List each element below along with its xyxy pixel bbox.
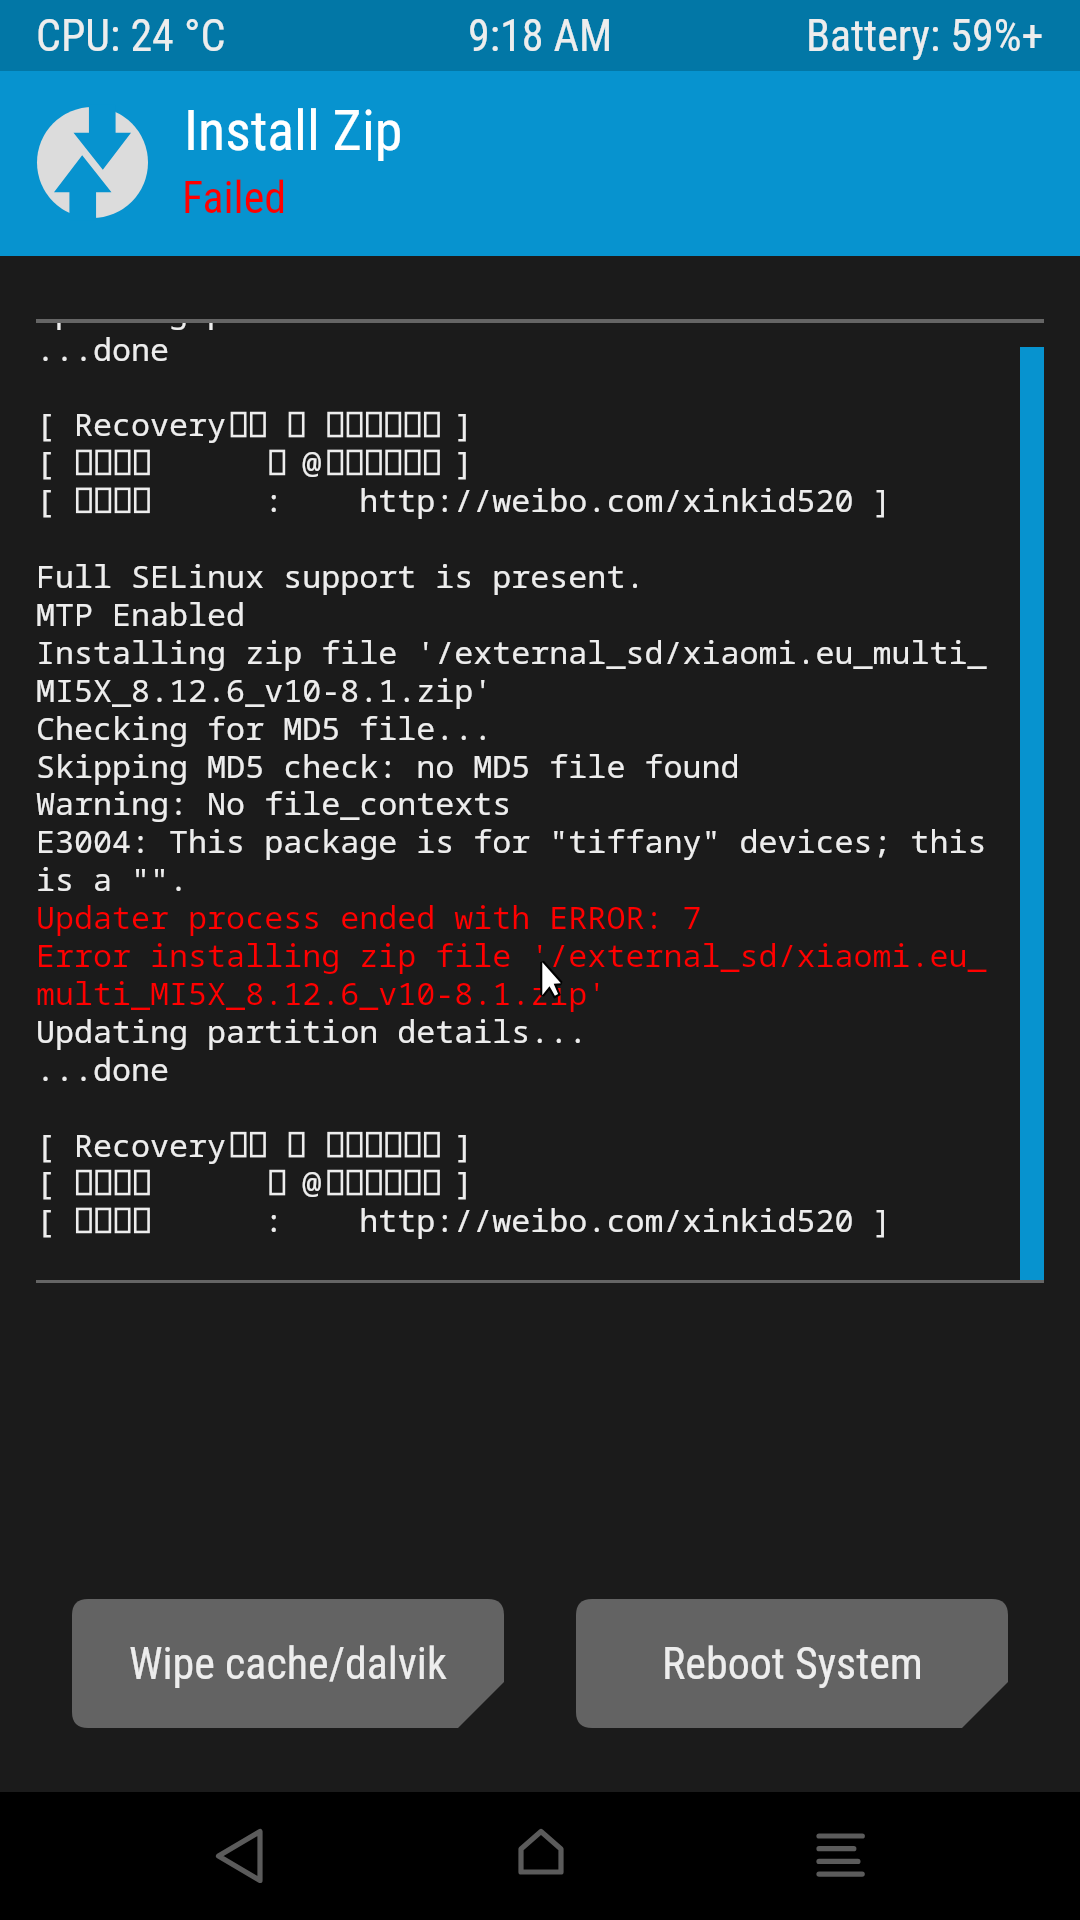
staticText: [ Recovery ] — [36, 402, 474, 445]
staticText: Error installing zip file '/external_sd/… — [36, 933, 987, 976]
staticText: Reboot System — [662, 1638, 923, 1690]
staticText: Updater process ended with ERROR: 7 — [36, 895, 702, 938]
staticText: is a "". — [36, 857, 189, 900]
staticText: ...done — [36, 1047, 170, 1090]
staticText: [ @ ] — [36, 440, 474, 483]
button[interactable]: Wipe cache/dalvik — [72, 1599, 504, 1728]
staticText: Wipe cache/dalvik — [129, 1638, 447, 1690]
staticText: Full SELinux support is present. — [36, 554, 645, 597]
staticText: CPU: 24 °C — [36, 10, 226, 62]
staticText: E3004: This package is for "tiffany" dev… — [36, 819, 987, 862]
staticText: MTP Enabled — [36, 592, 246, 635]
staticText: MI5X_8.12.6_v10-8.1.zip' — [36, 668, 493, 711]
staticText: Installing zip file '/external_sd/xiaomi… — [36, 630, 987, 673]
staticText: 9:18 AM — [468, 10, 613, 62]
staticText: ...done — [36, 327, 170, 370]
staticText: Updating partition details... — [36, 319, 588, 332]
staticText: Skipping MD5 check: no MD5 file found — [36, 744, 740, 787]
staticText: Checking for MD5 file... — [36, 706, 493, 749]
button[interactable]: Menu — [775, 1792, 907, 1920]
staticText: [ Recovery ] — [36, 1123, 474, 1166]
staticText: Updating partition details... — [36, 1009, 588, 1052]
button[interactable]: Home — [477, 1792, 609, 1920]
staticText: Battery: 59%+ — [806, 10, 1044, 62]
button[interactable]: Reboot System — [576, 1599, 1008, 1728]
staticText: [ : http://weibo.com/xinkid520 ] — [36, 478, 892, 521]
staticText: [ : http://weibo.com/xinkid520 ] — [36, 1198, 892, 1241]
button[interactable]: Back — [175, 1792, 307, 1920]
staticText: Failed — [182, 172, 287, 224]
staticText: [ @ ] — [36, 1160, 474, 1203]
staticText: Warning: No file_contexts — [36, 781, 512, 824]
staticText: multi_MI5X_8.12.6_v10-8.1.zip' — [36, 971, 607, 1014]
staticText: Install Zip — [184, 98, 403, 164]
